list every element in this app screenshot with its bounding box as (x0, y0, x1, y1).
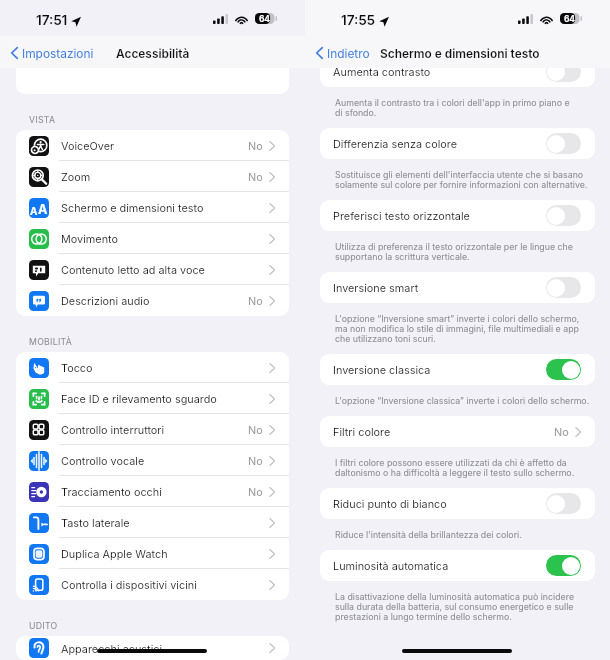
staticText: Apparecchi acustici (61, 642, 163, 655)
staticText: Duplica Apple Watch (61, 547, 168, 560)
button[interactable]: Controlla i dispositivi vicini (16, 569, 289, 600)
staticText: Schermo e dimensioni testo (61, 201, 204, 214)
staticText: No (248, 139, 263, 152)
button[interactable]: Differenzia senza colore (320, 128, 595, 159)
staticText: No (248, 294, 263, 307)
staticText: Controllo vocale (61, 454, 145, 467)
staticText: A (38, 202, 48, 217)
button[interactable]: Impostazioni (9, 44, 96, 62)
button[interactable]: Apparecchi acustici (16, 636, 289, 660)
button[interactable]: Zoom (16, 161, 289, 192)
staticText: Filtri colore (333, 425, 391, 438)
staticText: Aumenta il contrasto tra i colori dell'a… (335, 97, 570, 118)
staticText: No (248, 485, 263, 498)
staticText: Zoom (61, 170, 91, 183)
staticText: Face ID e rilevamento sguardo (61, 392, 217, 405)
staticText: Tocco (61, 361, 93, 374)
staticText: Descrizioni audio (61, 294, 150, 307)
staticText: No (248, 170, 263, 183)
staticText: VISTA (29, 115, 56, 126)
staticText: Movimento (61, 232, 118, 245)
button[interactable]: Riduci punto di bianco (320, 488, 595, 519)
button[interactable]: Descrizioni audio (16, 285, 289, 316)
staticText: Differenzia senza colore (333, 137, 458, 150)
staticText: Accessibilità (116, 46, 190, 60)
staticText: Inversione classica (333, 363, 431, 376)
staticText: 64 (564, 14, 575, 24)
button[interactable]: Controllo interruttori (16, 414, 289, 445)
staticText: Contenuto letto ad alta voce (61, 263, 205, 276)
button[interactable]: Preferisci testo orizzontale (320, 200, 595, 231)
button[interactable]: Tasto laterale (16, 507, 289, 538)
button[interactable]: VoiceOver (16, 130, 289, 161)
staticText: Utilizza di preferenza il testo orizzont… (335, 241, 573, 262)
staticText: Impostazioni (22, 46, 94, 60)
staticText: 17:51 (36, 12, 68, 28)
staticText: Riduci punto di bianco (333, 497, 447, 510)
staticText: La disattivazione della luminosità autom… (335, 591, 575, 622)
button[interactable]: Tracciamento occhi (16, 476, 289, 507)
staticText: Tasto laterale (61, 516, 130, 529)
button[interactable]: Inversione classica (320, 354, 595, 385)
button[interactable]: Duplica Apple Watch (16, 538, 289, 569)
staticText: No (248, 454, 263, 467)
button[interactable]: Filtri colore (320, 416, 595, 447)
staticText: Controllo interruttori (61, 423, 165, 436)
staticText: A (30, 205, 38, 217)
staticText: Luminosità automatica (333, 559, 449, 572)
button[interactable]: Face ID e rilevamento sguardo (16, 383, 289, 414)
button[interactable]: Movimento (16, 223, 289, 254)
button[interactable]: Inversione smart (320, 272, 595, 303)
button[interactable]: Contenuto letto ad alta voce (16, 254, 289, 285)
staticText: I filtri colore possono essere utilizzat… (335, 457, 575, 478)
staticText: L'opzione “Inversione classica” inverte … (335, 395, 590, 406)
button[interactable]: Indietro (314, 44, 372, 62)
staticText: VoiceOver (61, 139, 115, 152)
staticText: Indietro (327, 46, 370, 60)
button[interactable]: A (16, 192, 289, 223)
staticText: MOBILITÀ (29, 337, 73, 348)
staticText: UDITO (29, 621, 58, 632)
staticText: Sostituisce gli elementi dell'interfacci… (335, 169, 588, 190)
staticText: 17:55 (341, 12, 376, 28)
staticText: Tracciamento occhi (61, 485, 162, 498)
staticText: 64 (259, 14, 270, 24)
staticText: Preferisci testo orizzontale (333, 209, 470, 222)
staticText: No (554, 425, 569, 438)
staticText: Aumenta contrasto (333, 65, 431, 78)
staticText: Riduce l'intensità della brillantezza de… (335, 529, 522, 540)
staticText: L'opzione “Inversione smart” inverte i c… (335, 313, 580, 344)
button[interactable]: Luminosità automatica (320, 550, 595, 581)
button[interactable]: Controllo vocale (16, 445, 289, 476)
staticText: Controlla i dispositivi vicini (61, 578, 197, 591)
staticText: Inversione smart (333, 281, 419, 294)
staticText: No (248, 423, 263, 436)
staticText: Schermo e dimensioni testo (380, 46, 540, 60)
button[interactable]: Tocco (16, 352, 289, 383)
